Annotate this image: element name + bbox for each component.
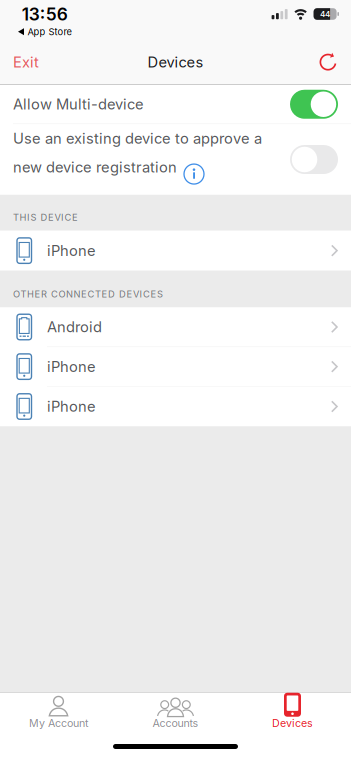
staticText: Use an existing device to approve a <box>13 130 262 147</box>
staticText: Devices <box>272 717 313 729</box>
button[interactable] <box>290 90 338 119</box>
button[interactable] <box>290 145 338 174</box>
button[interactable]: My Account <box>0 693 117 729</box>
staticText: 44 <box>320 9 330 19</box>
staticText: My Account <box>29 717 88 729</box>
staticText: Android <box>47 318 102 336</box>
staticText: iPhone <box>47 242 96 259</box>
staticText: OTHER CONNECTED DEVICES <box>13 288 163 299</box>
staticText: 13:56 <box>22 4 68 24</box>
staticText: Exit <box>13 53 39 71</box>
button[interactable]: Devices <box>234 693 351 729</box>
button[interactable]: iPhone <box>0 231 351 271</box>
button[interactable]: iPhone <box>0 387 351 426</box>
staticText: Devices <box>147 53 203 71</box>
button[interactable]: Android <box>0 307 351 346</box>
staticText: iPhone <box>47 358 96 375</box>
button[interactable]: iPhone <box>0 347 351 386</box>
button[interactable]: Allow Multi-device <box>0 85 351 123</box>
staticText: new device registration <box>13 158 177 176</box>
button[interactable] <box>319 52 351 72</box>
staticText: iPhone <box>47 398 96 415</box>
button[interactable]: Accounts <box>117 693 234 729</box>
button[interactable]: Use an existing device to approve a <box>0 124 351 195</box>
staticText: Accounts <box>152 717 198 729</box>
staticText: THIS DEVICE <box>13 212 78 223</box>
staticText: Allow Multi-device <box>13 96 144 113</box>
button[interactable]: Exit <box>0 53 39 71</box>
staticText: App Store <box>27 26 71 37</box>
